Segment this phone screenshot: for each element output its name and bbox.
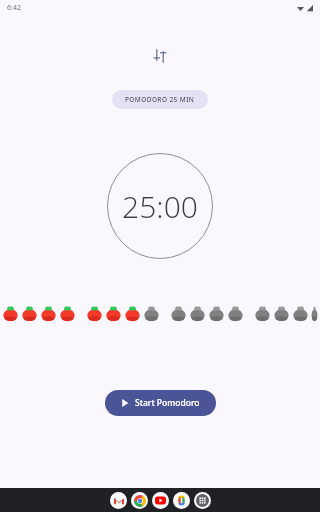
button[interactable]: App (110, 492, 127, 509)
button[interactable]: App (173, 492, 190, 509)
button[interactable]: App (131, 492, 148, 509)
staticText: 6:42 (7, 3, 21, 13)
button[interactable]: Start Pomodoro (105, 390, 216, 416)
staticText: Start Pomodoro (135, 397, 200, 409)
staticText: POMODORO 25 MIN (125, 95, 195, 104)
staticText: 25:00 (122, 186, 198, 227)
button[interactable]: App (194, 492, 211, 509)
button[interactable]: POMODORO 25 MIN (112, 90, 208, 109)
button[interactable]: App (152, 492, 169, 509)
button[interactable]: Settings (147, 43, 173, 69)
